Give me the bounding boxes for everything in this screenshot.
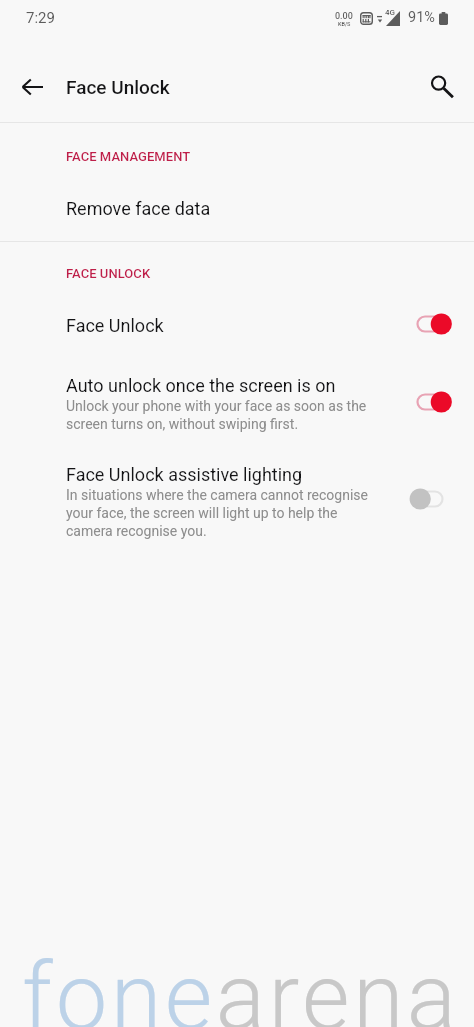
staticText: fonearena bbox=[22, 944, 460, 1027]
button[interactable]: Toggle on bbox=[404, 385, 456, 419]
staticText: 4G bbox=[385, 8, 395, 17]
staticText: 91% bbox=[408, 9, 435, 26]
staticText: 7:29 bbox=[26, 9, 55, 27]
button[interactable]: Auto unlock once the screen is on bbox=[0, 375, 474, 401]
staticText: Unlock your phone with your face as soon… bbox=[66, 397, 367, 433]
button[interactable]: Remove face data bbox=[0, 198, 474, 224]
button[interactable]: Back bbox=[8, 63, 56, 111]
staticText: FACE UNLOCK bbox=[66, 266, 151, 281]
staticText: Face Unlock assistive lighting bbox=[66, 464, 303, 485]
button[interactable]: Toggle on bbox=[404, 307, 456, 341]
staticText: In situations where the camera cannot re… bbox=[66, 486, 368, 540]
staticText: Face Unlock bbox=[66, 315, 164, 336]
button[interactable]: Face Unlock bbox=[0, 315, 474, 341]
staticText: FACE MANAGEMENT bbox=[66, 149, 191, 164]
button[interactable]: Face Unlock assistive lighting bbox=[0, 464, 474, 490]
staticText: KB/S bbox=[338, 21, 351, 27]
button[interactable]: Search bbox=[418, 63, 466, 111]
staticText: Auto unlock once the screen is on bbox=[66, 375, 336, 396]
staticText: 0.00 bbox=[335, 11, 353, 22]
staticText: Face Unlock bbox=[66, 76, 170, 98]
button[interactable]: Toggle off bbox=[404, 482, 456, 516]
staticText: Remove face data bbox=[66, 198, 211, 219]
